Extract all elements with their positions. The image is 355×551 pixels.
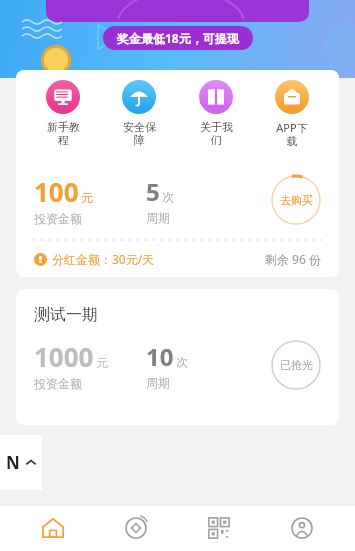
staticText: APP下 载 (276, 120, 308, 149)
button[interactable]: 去购买 (271, 175, 321, 225)
staticText: 日限购 1 份 (259, 142, 321, 158)
staticText: 已抢光 (280, 358, 313, 372)
button[interactable]: 关于我 们 (180, 80, 252, 148)
button[interactable]: Home (23, 505, 83, 551)
staticText: 关于我 们 (200, 120, 233, 148)
staticText: N (6, 451, 20, 474)
button[interactable]: 测试一期 (16, 289, 339, 425)
staticText: 周期 (146, 210, 170, 225)
button[interactable]: Discover (106, 505, 166, 551)
staticText: 元 (81, 190, 93, 205)
button[interactable]: Profile (272, 505, 332, 551)
button[interactable]: 已抢光 (271, 340, 321, 390)
staticText: 100 (34, 174, 79, 209)
button[interactable]: 新手专享 (16, 124, 339, 277)
button[interactable]: 安全保 障 (103, 80, 175, 148)
button[interactable]: 新手教 程 (27, 80, 99, 148)
staticText: 测试一期 (34, 305, 98, 325)
staticText: 5 (146, 175, 160, 208)
staticText: 分红金额：30元/天 (52, 251, 155, 267)
staticText: 10 (146, 340, 174, 373)
staticText: 投资金额 (34, 211, 82, 226)
staticText: 安全保 障 (123, 120, 156, 148)
staticText: 剩余 96 份 (265, 251, 321, 267)
staticText: 去购买 (280, 193, 313, 207)
staticText: 元 (96, 355, 108, 370)
staticText: 新手专享 (34, 140, 98, 160)
staticText: 奖金最低18元，可提现 (117, 30, 239, 46)
staticText: 次 (176, 354, 188, 369)
staticText: 1000 (34, 339, 94, 374)
staticText: 次 (162, 189, 174, 204)
staticText: 新手教 程 (47, 120, 80, 148)
button[interactable]: Scan QR code (189, 505, 249, 551)
button[interactable]: APP下 载 (256, 80, 328, 149)
staticText: 理财精选 (146, 92, 210, 112)
button[interactable]: Collapse (0, 435, 42, 490)
staticText: 投资金额 (34, 376, 82, 391)
staticText: 周期 (146, 375, 170, 390)
